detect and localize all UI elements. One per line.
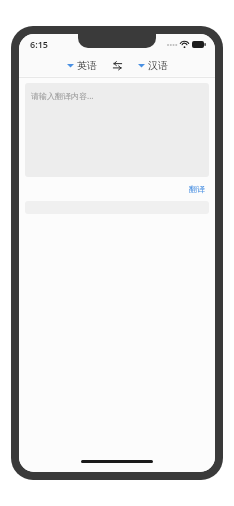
button[interactable]: 汉语 bbox=[135, 57, 171, 74]
staticText: 英语 bbox=[77, 59, 97, 72]
button[interactable]: Swap languages bbox=[110, 58, 125, 73]
button[interactable]: 请输入翻译内容... bbox=[25, 83, 209, 177]
staticText: 汉语 bbox=[148, 59, 168, 72]
staticText: 6:15 bbox=[30, 38, 48, 50]
staticText: 请输入翻译内容... bbox=[31, 90, 94, 101]
staticText: 翻译 bbox=[189, 184, 205, 194]
button[interactable]: 英语 bbox=[64, 57, 100, 74]
button[interactable]: 翻译 bbox=[185, 182, 209, 196]
